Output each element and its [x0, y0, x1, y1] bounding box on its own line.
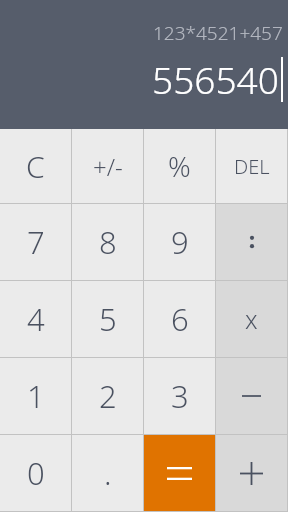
staticText: 4: [27, 298, 45, 340]
button[interactable]: Minus: [216, 358, 287, 434]
button[interactable]: Plus: [216, 435, 287, 511]
button[interactable]: %: [144, 129, 215, 203]
staticText: 2: [99, 375, 117, 417]
button[interactable]: 3: [144, 358, 215, 434]
staticText: x: [245, 302, 258, 336]
button[interactable]: 4: [0, 281, 71, 357]
staticText: +/-: [93, 150, 123, 183]
staticText: .: [104, 452, 112, 494]
staticText: 5: [99, 298, 117, 340]
staticText: 6: [171, 298, 189, 340]
button[interactable]: .: [72, 435, 143, 511]
staticText: 556540: [152, 54, 279, 104]
staticText: 1: [27, 375, 45, 417]
staticText: 123*4521+457: [153, 20, 283, 46]
button[interactable]: 2: [72, 358, 143, 434]
staticText: DEL: [234, 153, 270, 180]
button[interactable]: Equals: [144, 435, 215, 511]
staticText: 9: [171, 221, 189, 263]
button[interactable]: Divide: [216, 204, 287, 280]
staticText: 7: [27, 221, 45, 263]
button[interactable]: 0: [0, 435, 71, 511]
button[interactable]: C: [0, 129, 71, 203]
button[interactable]: 8: [72, 204, 143, 280]
button[interactable]: 5: [72, 281, 143, 357]
button[interactable]: 7: [0, 204, 71, 280]
button[interactable]: Multiply: [216, 281, 287, 357]
staticText: 0: [27, 452, 45, 494]
button[interactable]: 6: [144, 281, 215, 357]
button[interactable]: 9: [144, 204, 215, 280]
staticText: C: [26, 146, 45, 187]
staticText: 3: [171, 375, 189, 417]
staticText: 8: [99, 221, 117, 263]
button[interactable]: 1: [0, 358, 71, 434]
button[interactable]: +/-: [72, 129, 143, 203]
button[interactable]: DEL: [216, 129, 287, 203]
staticText: %: [168, 147, 191, 185]
